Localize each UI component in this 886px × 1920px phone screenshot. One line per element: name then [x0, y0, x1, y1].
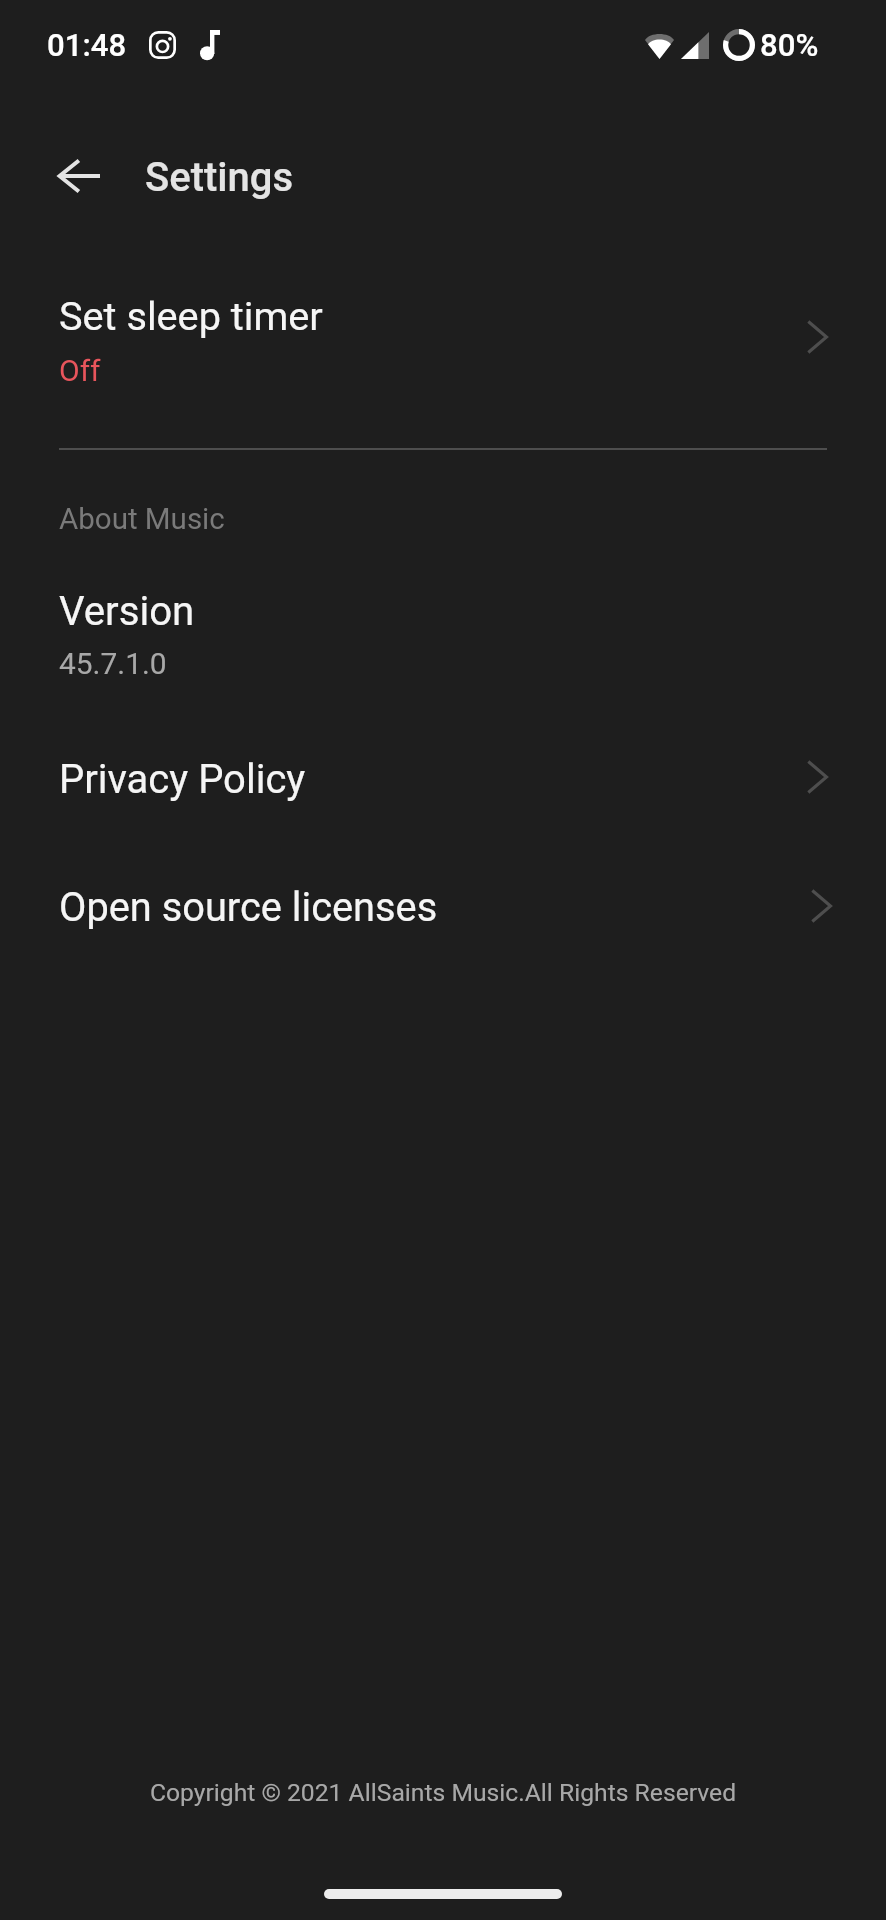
- button[interactable]: Open source licenses: [0, 863, 886, 959]
- staticText: Open source licenses: [59, 884, 438, 931]
- other: Mobile signal: [681, 32, 709, 59]
- other: Wi-Fi: [645, 32, 674, 59]
- other: Instagram notification: [149, 31, 176, 59]
- staticText: Privacy Policy: [59, 756, 306, 803]
- staticText: Off: [59, 353, 101, 388]
- staticText: Settings: [145, 154, 294, 201]
- button[interactable]: Set sleep timer: [0, 272, 886, 412]
- staticText: Set sleep timer: [59, 293, 323, 340]
- staticText: 45.7.1.0: [59, 646, 167, 681]
- other: Battery 80 percent: [723, 29, 755, 61]
- button[interactable]: Navigate back: [45, 142, 113, 210]
- staticText: Copyright © 2021 AllSaints Music.All Rig…: [0, 1778, 886, 1807]
- staticText: Version: [59, 588, 195, 635]
- staticText: About Music: [59, 502, 225, 537]
- other: Music playing: [200, 30, 220, 60]
- staticText: 80%: [760, 27, 819, 64]
- staticText: 01:48: [47, 27, 127, 64]
- button[interactable]: Privacy Policy: [0, 735, 886, 831]
